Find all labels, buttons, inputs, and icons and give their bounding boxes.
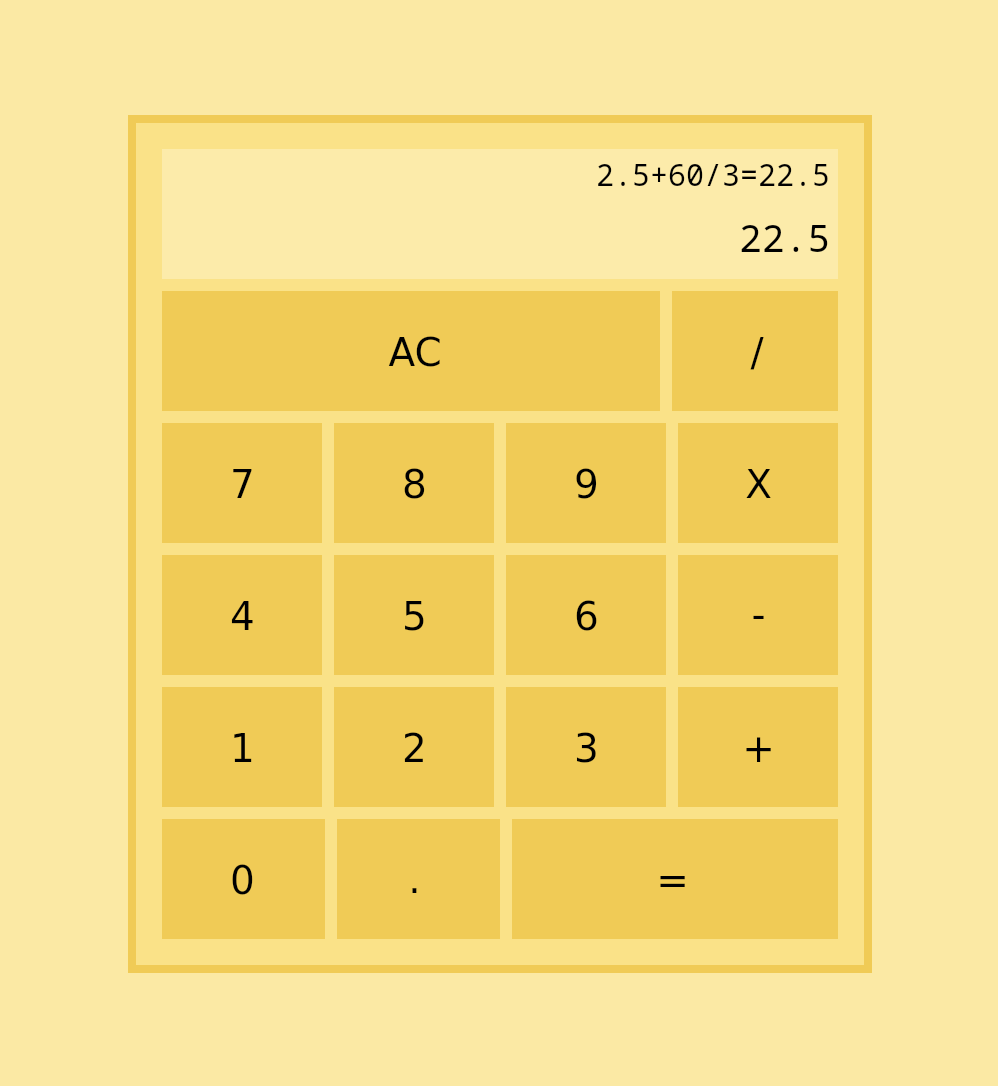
button[interactable]: 6 (506, 555, 666, 675)
staticText: X (745, 462, 772, 507)
staticText: = (656, 858, 689, 903)
button[interactable]: + (678, 687, 838, 807)
staticText: AC (388, 330, 442, 375)
staticText: 4 (230, 594, 255, 639)
staticText: 8 (402, 462, 427, 507)
button[interactable]: 4 (162, 555, 322, 675)
button[interactable]: = (512, 819, 838, 939)
staticText: 0 (230, 858, 255, 903)
button[interactable]: 9 (506, 423, 666, 543)
button[interactable]: X (678, 423, 838, 543)
staticText: 7 (230, 462, 255, 507)
staticText: 5 (402, 594, 427, 639)
button[interactable]: - (678, 555, 838, 675)
button[interactable]: 1 (162, 687, 322, 807)
staticText: . (408, 857, 421, 902)
staticText: 6 (574, 594, 599, 639)
button[interactable]: 5 (334, 555, 494, 675)
staticText: 1 (230, 726, 255, 771)
staticText: 22.5 (739, 211, 831, 263)
button[interactable]: / (672, 291, 838, 411)
button[interactable]: 2 (334, 687, 494, 807)
button[interactable]: . (337, 819, 500, 939)
staticText: / (750, 330, 764, 375)
staticText: 2 (402, 726, 427, 771)
staticText: 2.5+60/3=22.5 (596, 154, 830, 195)
button[interactable]: AC (162, 291, 660, 411)
staticText: - (751, 592, 766, 637)
staticText: 9 (574, 462, 599, 507)
button[interactable]: 8 (334, 423, 494, 543)
button[interactable]: 3 (506, 687, 666, 807)
staticText: 3 (574, 726, 599, 771)
staticText: + (742, 726, 775, 771)
button[interactable]: 7 (162, 423, 322, 543)
button[interactable]: 0 (162, 819, 325, 939)
